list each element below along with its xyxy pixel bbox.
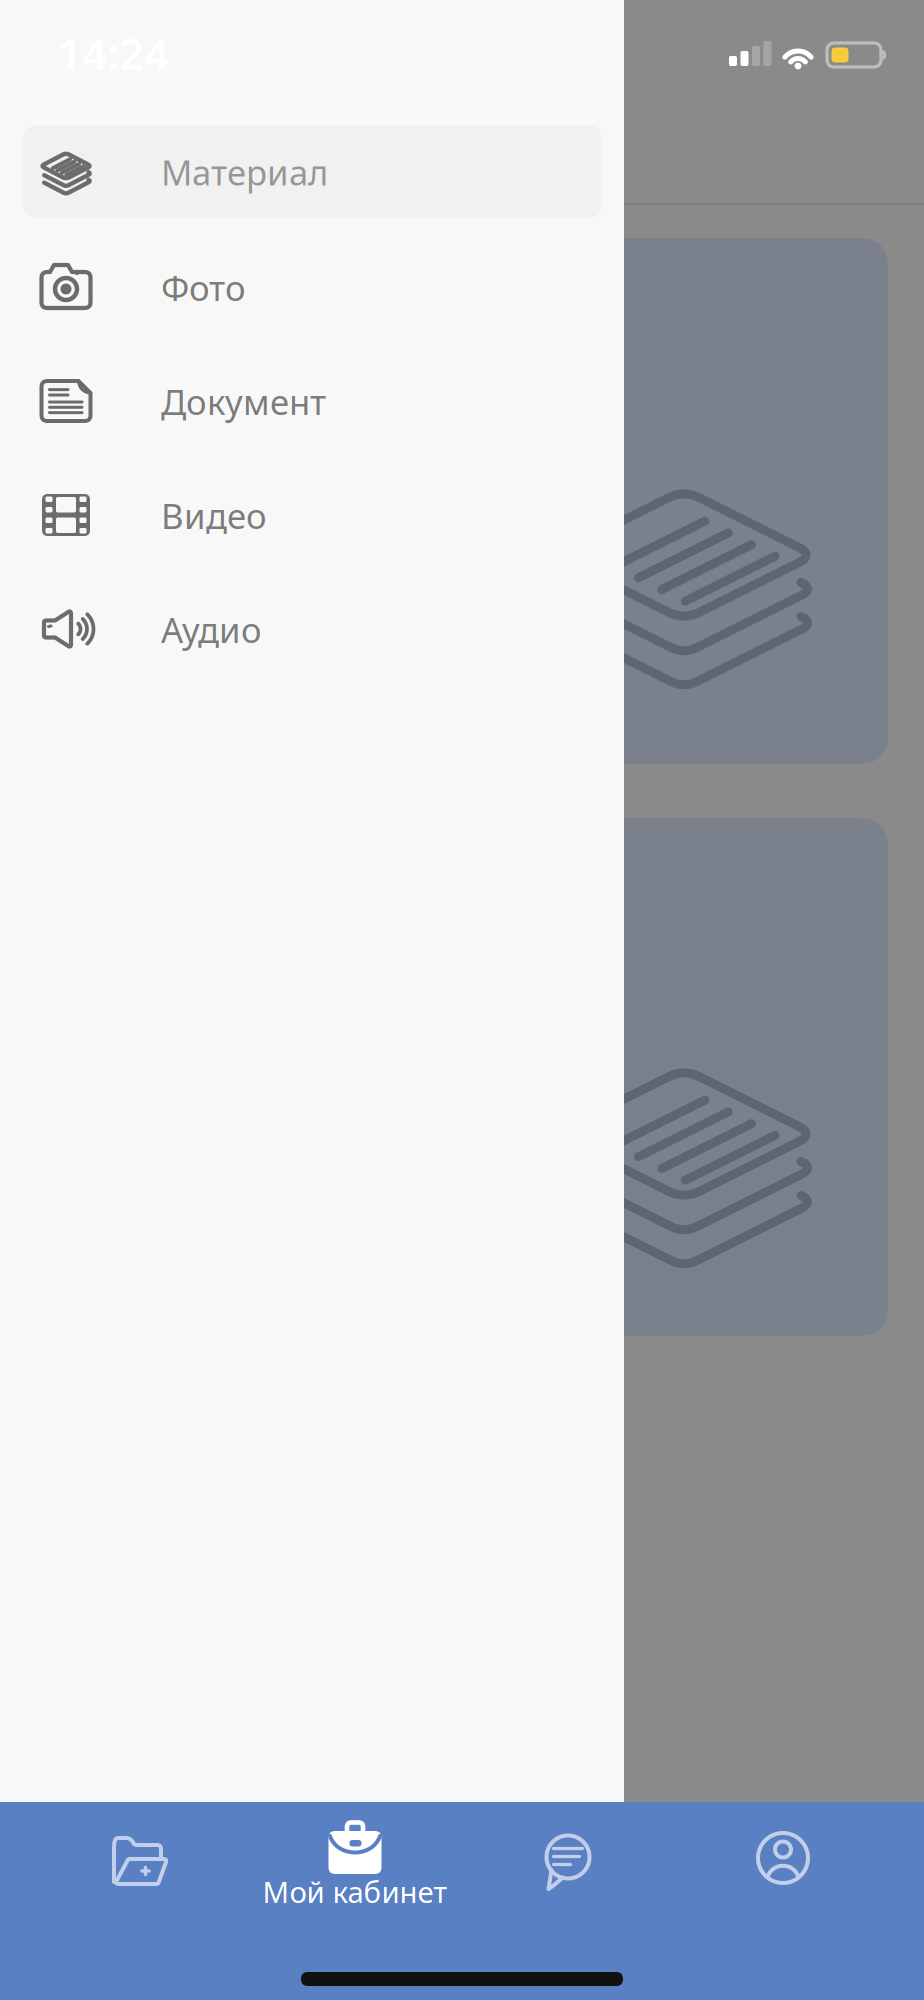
button[interactable]: Материал — [23, 125, 602, 218]
button[interactable]: Аудио — [23, 582, 602, 675]
staticText: Документ — [161, 378, 326, 424]
staticText: Материал — [161, 149, 328, 195]
button[interactable]: Документ — [23, 354, 602, 447]
button[interactable]: Сообщения — [537, 1830, 599, 1894]
staticText: Аудио — [161, 606, 262, 652]
button[interactable]: Видео — [23, 468, 602, 561]
staticText: Мой кабинет — [262, 1872, 447, 1911]
button[interactable]: Добавить — [110, 1830, 172, 1892]
button[interactable]: Фото — [23, 240, 602, 333]
staticText: Фото — [161, 264, 246, 310]
staticText: Видео — [161, 492, 267, 538]
button[interactable]: Мой кабинет — [255, 1819, 455, 1915]
button[interactable]: Профиль — [752, 1827, 814, 1889]
